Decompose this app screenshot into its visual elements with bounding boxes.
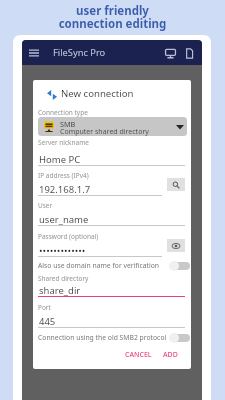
staticText: Also use domain name for verification [38,261,169,270]
button[interactable]: CANCEL [121,347,156,363]
button[interactable]: Open navigation menu [26,45,42,61]
button[interactable]: ADD [159,347,182,363]
staticText: share_dir [39,284,81,297]
staticText: Connection type [38,108,88,117]
staticText: Port [38,303,51,312]
staticText: Password (optional) [38,232,99,241]
button[interactable]: Connection using the old SMB2 protocol [38,330,190,344]
staticText: Computer shared directory [60,127,149,136]
staticText: ••••••••••••• [39,244,86,257]
staticText: New connection [61,87,134,100]
staticText: CANCEL [125,350,152,360]
staticText: Server nickname [38,138,89,147]
staticText: user friendly connection editing [0,3,225,31]
staticText: FileSync Pro [53,46,106,59]
staticText: Shared directory [38,274,89,283]
staticText: Home PC [39,153,81,166]
button[interactable]: SMB [38,117,187,136]
button[interactable]: Computers [162,45,178,61]
staticText: IP address (IPv4) [38,171,89,180]
staticText: 445 [39,315,56,328]
staticText: SMB [60,119,76,129]
button[interactable]: Search [167,178,185,191]
staticText: User [38,201,53,210]
button[interactable]: Show password [167,239,185,252]
staticText: ADD [163,350,178,360]
staticText: user_name [39,213,89,226]
button[interactable]: Also use domain name for verification [38,258,190,272]
button[interactable]: Files [181,45,197,61]
staticText: Connection using the old SMB2 protocol [38,333,169,342]
staticText: 192.168.1.7 [39,183,91,196]
